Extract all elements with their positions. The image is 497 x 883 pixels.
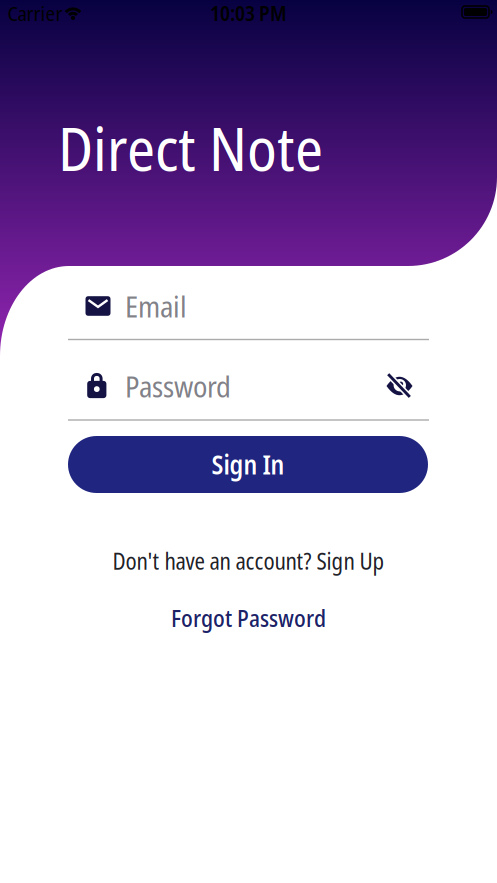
button[interactable]: Forgot Password xyxy=(171,602,326,634)
staticText: Email xyxy=(125,286,187,326)
button[interactable]: Don't have an account? Sign Up xyxy=(112,546,384,576)
button[interactable]: Sign In xyxy=(68,436,428,493)
staticText: Password xyxy=(125,366,231,406)
staticText: Carrier xyxy=(7,0,62,27)
staticText: Direct Note xyxy=(58,106,323,189)
button[interactable]: Email xyxy=(68,266,429,346)
staticText: Forgot Password xyxy=(171,602,326,634)
staticText: 10:03 PM xyxy=(210,0,287,27)
staticText: Sign In xyxy=(211,447,284,482)
staticText: Don't have an account? Sign Up xyxy=(112,546,384,576)
button[interactable]: Password xyxy=(68,346,429,426)
